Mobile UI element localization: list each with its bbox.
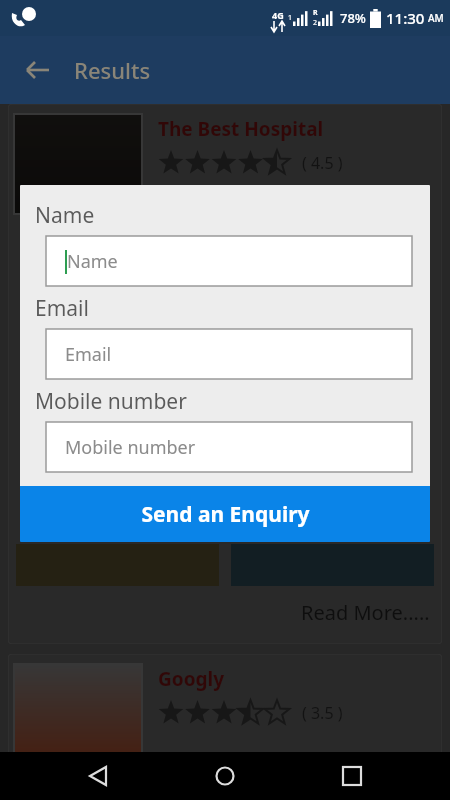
- staticText: Send an Enquiry: [141, 500, 310, 529]
- staticText: Email: [65, 342, 112, 367]
- button[interactable]: Mobile number: [46, 422, 412, 472]
- staticText: Name: [67, 249, 118, 274]
- button[interactable]: The Best Hospital: [8, 104, 442, 644]
- staticText: R: [313, 8, 318, 18]
- button[interactable]: Home: [197, 752, 253, 800]
- staticText: Results: [74, 55, 151, 85]
- button[interactable]: Read More.....: [301, 599, 430, 626]
- staticText: ( 4.5 ): [302, 152, 343, 174]
- button[interactable]: Back: [14, 46, 62, 94]
- staticText: Name: [35, 201, 95, 230]
- staticText: 78%: [340, 9, 366, 27]
- staticText: Googly: [158, 666, 225, 692]
- button[interactable]: Googly: [8, 654, 442, 800]
- button[interactable]: Email: [46, 329, 412, 379]
- staticText: Mobile number: [35, 387, 187, 416]
- staticText: 1: [288, 13, 293, 23]
- staticText: The Best Hospital: [158, 116, 324, 142]
- button[interactable]: Back: [71, 752, 127, 800]
- staticText: AM: [428, 11, 444, 25]
- staticText: 2: [313, 18, 318, 28]
- staticText: 11:30: [386, 8, 425, 28]
- button[interactable]: Send an Enquiry: [20, 486, 430, 542]
- staticText: 4G: [272, 9, 284, 21]
- staticText: Mobile number: [65, 435, 196, 460]
- button[interactable]: Recents: [324, 752, 380, 800]
- staticText: Read More.....: [301, 599, 430, 626]
- staticText: ( 3.5 ): [302, 702, 343, 724]
- button[interactable]: Name: [46, 236, 412, 286]
- staticText: Email: [35, 294, 89, 323]
